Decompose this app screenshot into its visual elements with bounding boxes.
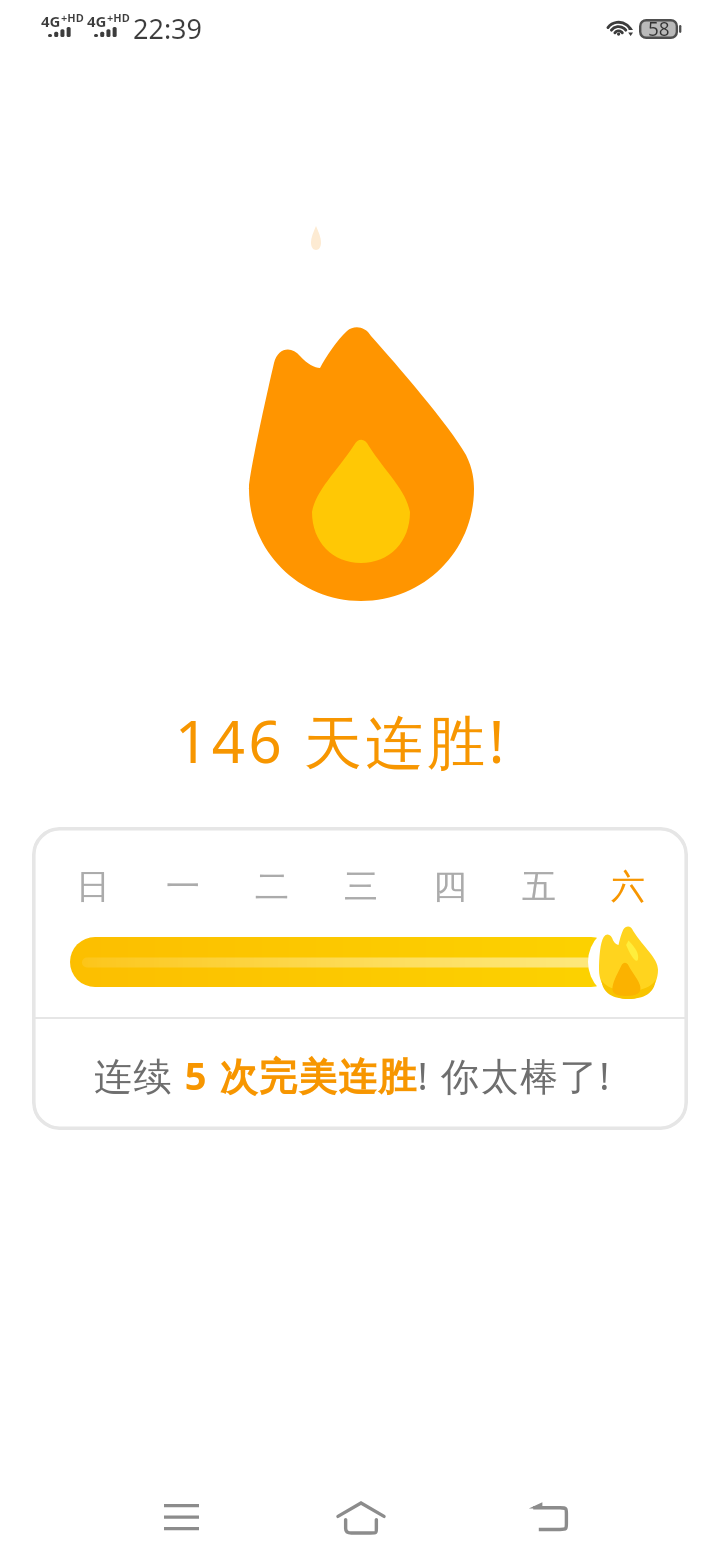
staticText: +HD (107, 10, 130, 25)
staticText: 4G (41, 11, 61, 31)
staticText: 4G (87, 11, 107, 31)
button[interactable]: 日 (32, 827, 688, 1130)
staticText: 三 (344, 865, 378, 908)
button[interactable]: Recent apps (139, 1475, 223, 1559)
button[interactable]: Back (506, 1476, 590, 1560)
staticText: 22:39 (133, 10, 203, 47)
staticText: 58 (648, 16, 670, 42)
staticText: 日 (76, 865, 110, 908)
staticText: 146 天连胜! (175, 701, 509, 780)
staticText: 五 (522, 865, 556, 908)
staticText: 一 (166, 865, 200, 908)
staticText: 二 (255, 865, 289, 908)
staticText: 四 (433, 865, 467, 908)
staticText: 连续 5 次完美连胜! 你太棒了! (94, 1049, 612, 1101)
staticText: 六 (611, 865, 645, 908)
staticText: +HD (61, 10, 84, 25)
button[interactable]: Home (319, 1476, 403, 1560)
